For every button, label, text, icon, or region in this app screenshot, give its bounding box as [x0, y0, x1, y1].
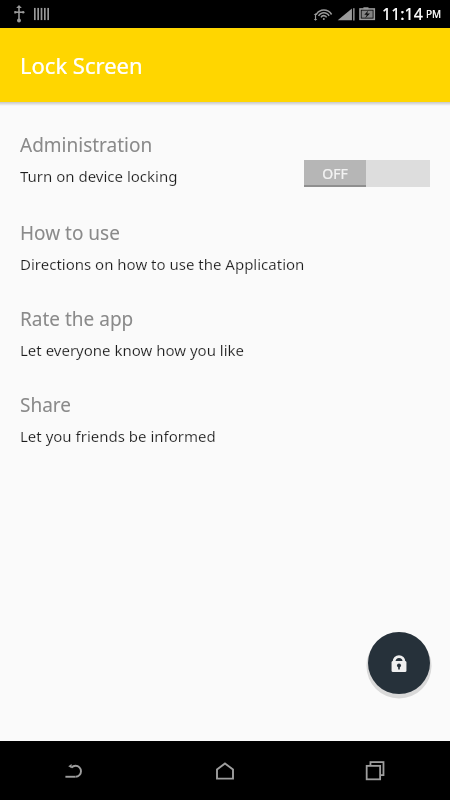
staticText: Turn on device locking — [20, 166, 178, 186]
staticText: Let everyone know how you like — [20, 340, 245, 360]
staticText: Directions on how to use the Application — [20, 254, 305, 274]
staticText: Share — [20, 392, 72, 418]
staticText: PM — [426, 7, 442, 21]
staticText: Administration — [20, 132, 153, 158]
staticText: How to use — [20, 220, 120, 246]
button[interactable]: Administration — [0, 132, 450, 186]
button[interactable]: Share — [0, 392, 450, 446]
button[interactable]: Recent apps — [300, 741, 450, 800]
staticText: Lock Screen — [20, 50, 143, 80]
staticText: Rate the app — [20, 306, 134, 332]
button[interactable]: Turn on device locking — [304, 160, 430, 187]
staticText: Let you friends be informed — [20, 426, 216, 446]
staticText: 11:14 — [382, 3, 423, 25]
button[interactable]: How to use — [0, 220, 450, 274]
button[interactable]: Back — [0, 741, 150, 800]
button[interactable]: Rate the app — [0, 306, 450, 360]
button[interactable]: Home — [150, 741, 300, 800]
button[interactable]: Lock device — [368, 632, 430, 694]
staticText: OFF — [322, 164, 348, 183]
